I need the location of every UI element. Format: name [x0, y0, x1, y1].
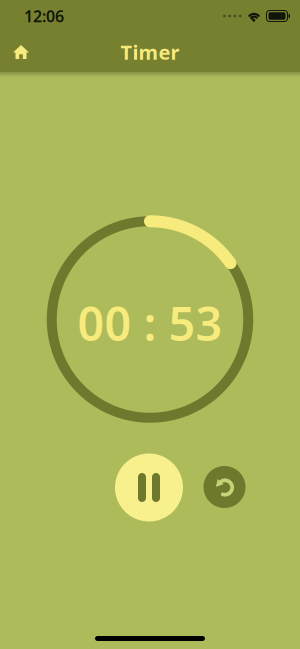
staticText: 00 : 53 — [77, 292, 222, 354]
button[interactable]: Home — [13, 45, 29, 59]
button[interactable]: Pause — [115, 453, 183, 521]
staticText: Timer — [120, 39, 179, 65]
button[interactable]: Reset — [203, 466, 245, 508]
staticText: 12:06 — [24, 5, 64, 27]
